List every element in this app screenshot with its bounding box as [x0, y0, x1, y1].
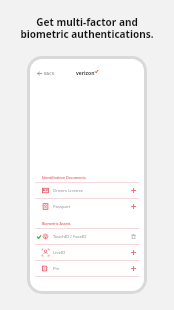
button[interactable]: LiveID	[35, 245, 139, 260]
staticText: Passport	[53, 204, 71, 210]
staticText: Identification Documents	[42, 175, 86, 180]
staticText: Drivers License	[53, 188, 83, 194]
other: Add Passport	[131, 204, 136, 209]
staticText: Pin	[53, 266, 60, 272]
staticText: LiveID	[53, 250, 66, 256]
button[interactable]: Drivers License	[35, 183, 139, 198]
button[interactable]: BACK	[36, 70, 56, 77]
other: Add LiveID	[131, 250, 136, 255]
staticText: Biometric Assets	[42, 221, 71, 226]
other: Add Drivers License	[131, 188, 136, 193]
staticText: verizon	[76, 70, 95, 77]
staticText: Get multi-factor and biometric authentic…	[20, 15, 154, 41]
other: Add Pin	[131, 266, 136, 271]
button[interactable]: TouchID / FaceID	[35, 229, 139, 244]
button[interactable]: Pin	[35, 261, 139, 276]
button[interactable]: Passport	[35, 199, 139, 214]
staticText: BACK	[44, 71, 55, 76]
staticText: TouchID / FaceID	[53, 234, 87, 240]
other: Delete TouchID / FaceID	[131, 234, 136, 239]
